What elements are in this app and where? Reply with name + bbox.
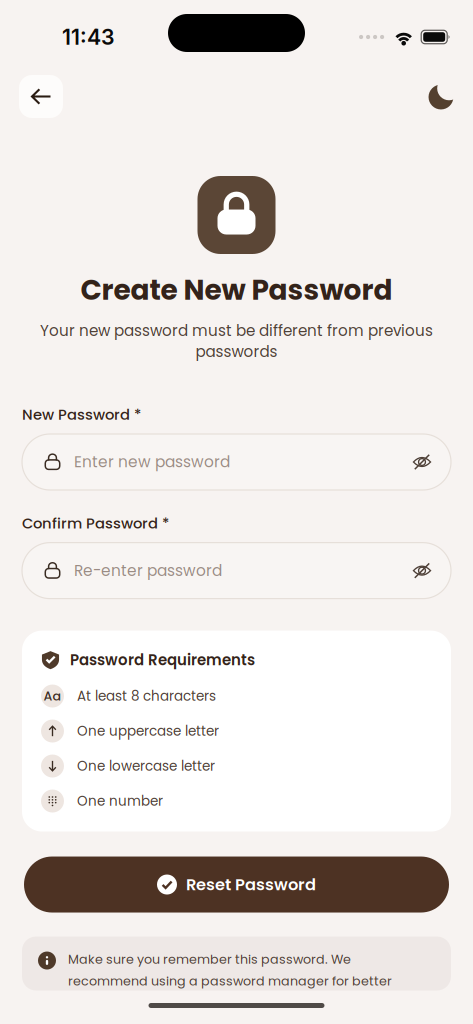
staticText: Create New Password	[80, 270, 392, 310]
staticText: New Password *	[22, 404, 141, 425]
staticText: Password Requirements	[70, 650, 255, 670]
button[interactable]: Show password	[401, 439, 443, 485]
staticText: 11:43	[62, 24, 115, 50]
staticText: Make sure you remember this password. We	[68, 950, 351, 968]
staticText: At least 8 characters	[77, 687, 216, 705]
button[interactable]: Reset Password	[0, 856, 473, 912]
button[interactable]: Show password	[401, 548, 443, 594]
staticText: Enter new password	[74, 451, 230, 473]
staticText: Aa	[43, 687, 61, 705]
button[interactable]: Toggle dark mode	[428, 78, 455, 114]
staticText: passwords	[195, 341, 277, 362]
staticText: One uppercase letter	[77, 722, 219, 740]
button[interactable]: Back	[19, 75, 63, 118]
staticText: One number	[77, 792, 163, 810]
staticText: Reset Password	[186, 873, 316, 896]
staticText: Re-enter password	[74, 560, 222, 581]
staticText: One lowercase letter	[77, 757, 215, 775]
staticText: recommend using a password manager for b…	[68, 972, 392, 990]
staticText: Your new password must be different from…	[40, 320, 433, 341]
staticText: Confirm Password *	[22, 513, 169, 534]
